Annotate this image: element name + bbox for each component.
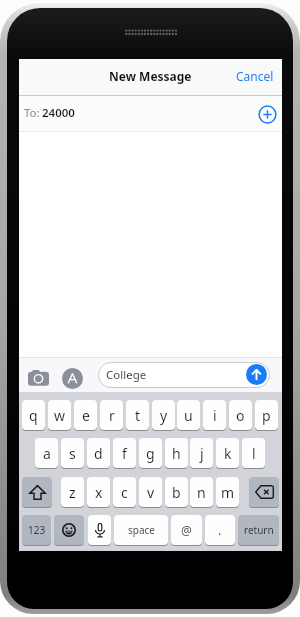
staticText: Cancel [236, 68, 274, 84]
staticText: a [43, 444, 51, 463]
staticText: . [218, 522, 222, 538]
staticText: j [200, 444, 204, 463]
button[interactable]: u [177, 400, 200, 430]
button[interactable] [28, 370, 49, 386]
staticText: 24000 [42, 105, 75, 121]
staticText: To: [24, 105, 40, 121]
staticText: m [221, 483, 235, 502]
staticText: x [95, 483, 103, 502]
button[interactable]: n [190, 477, 213, 507]
staticText: b [172, 483, 181, 502]
button[interactable]: d [87, 438, 110, 468]
staticText: New Message [109, 68, 192, 84]
button[interactable] [19, 96, 282, 131]
staticText: c [121, 483, 128, 502]
staticText: p [262, 406, 271, 425]
button[interactable]: l [242, 438, 265, 468]
button[interactable] [246, 364, 267, 385]
staticText: s [69, 444, 76, 463]
button[interactable]: i [203, 400, 226, 430]
button[interactable]: m [216, 477, 239, 507]
staticText: e [82, 406, 90, 425]
staticText: q [29, 406, 38, 425]
button[interactable]: space [114, 515, 168, 545]
button[interactable]: b [165, 477, 188, 507]
staticText: t [135, 406, 141, 425]
button[interactable]: y [152, 400, 175, 430]
staticText: y [160, 406, 168, 425]
button[interactable]: w [48, 400, 71, 430]
button[interactable]: c [113, 477, 136, 507]
button[interactable]: v [139, 477, 162, 507]
button[interactable]: z [61, 477, 84, 507]
button[interactable]: r [100, 400, 123, 430]
button[interactable]: o [229, 400, 252, 430]
staticText: d [94, 444, 103, 463]
button[interactable]: f [113, 438, 136, 468]
staticText: z [69, 483, 76, 502]
button[interactable]: t [126, 400, 149, 430]
button[interactable] [54, 515, 84, 545]
staticText: 123 [28, 523, 46, 537]
staticText: l [252, 444, 256, 463]
button[interactable] [22, 477, 52, 507]
staticText: w [54, 406, 66, 425]
staticText: return [244, 523, 274, 537]
button[interactable]: p [255, 400, 278, 430]
button[interactable]: g [139, 438, 162, 468]
staticText: space [128, 523, 155, 537]
button[interactable]: k [216, 438, 239, 468]
staticText: k [224, 444, 232, 463]
staticText: h [172, 444, 181, 463]
button[interactable]: e [74, 400, 97, 430]
button[interactable]: h [165, 438, 188, 468]
button[interactable] [62, 368, 83, 389]
staticText: n [197, 483, 206, 502]
staticText: @ [181, 522, 192, 538]
button[interactable] [258, 105, 277, 124]
button[interactable] [88, 515, 111, 545]
button[interactable]: q [22, 400, 45, 430]
staticText: f [122, 444, 127, 463]
staticText: u [184, 406, 193, 425]
staticText: College [106, 367, 147, 383]
button[interactable]: return [238, 515, 279, 545]
button[interactable]: x [87, 477, 110, 507]
button[interactable]: j [190, 438, 213, 468]
staticText: i [213, 406, 217, 425]
button[interactable]: Cancel [236, 61, 284, 91]
button[interactable]: a [35, 438, 58, 468]
button[interactable] [249, 477, 279, 507]
button[interactable]: s [61, 438, 84, 468]
staticText: g [146, 444, 155, 463]
button[interactable] [98, 362, 270, 388]
staticText: v [147, 483, 155, 502]
staticText: r [109, 406, 115, 425]
button[interactable]: . [205, 515, 235, 545]
button[interactable]: @ [171, 515, 202, 545]
staticText: o [236, 406, 245, 425]
button[interactable]: 123 [22, 515, 51, 545]
